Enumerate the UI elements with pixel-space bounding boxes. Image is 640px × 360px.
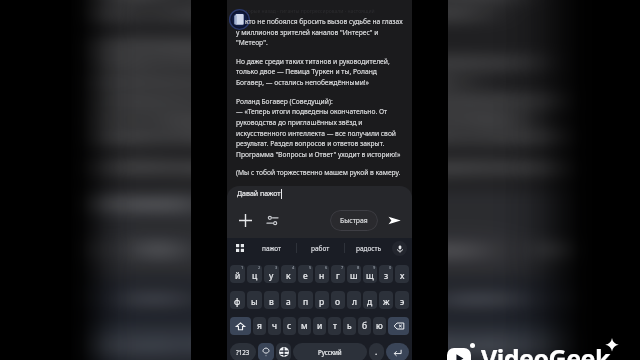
- button[interactable]: работ: [242, 280, 402, 314]
- staticText: — «Теперь итоги подведены окончательно. …: [236, 107, 388, 116]
- button[interactable]: Shift: [230, 317, 251, 335]
- button[interactable]: Enter: [386, 343, 409, 360]
- button[interactable]: а: [281, 291, 296, 309]
- button[interactable]: х: [575, 326, 623, 357]
- staticText: Богавер, — остались непобеждёнными!»: [34, 5, 490, 20]
- button[interactable]: б: [358, 317, 371, 335]
- button[interactable]: Emoji: [258, 343, 274, 360]
- button[interactable]: 0: [521, 326, 568, 357]
- staticText: искусственного интеллекта — все получили…: [34, 92, 582, 108]
- button[interactable]: я: [253, 317, 266, 335]
- staticText: у: [269, 270, 274, 282]
- button[interactable]: ж: [379, 291, 393, 309]
- staticText: ц: [89, 335, 109, 355]
- staticText: 3: [275, 265, 278, 270]
- button[interactable]: .: [369, 343, 384, 360]
- button[interactable]: ь: [343, 317, 356, 335]
- staticText: ф: [234, 296, 241, 308]
- button[interactable]: пажот: [248, 238, 296, 258]
- staticText: 9: [500, 326, 510, 335]
- button[interactable]: п: [298, 291, 313, 309]
- button[interactable]: 4: [281, 265, 296, 283]
- staticText: 4: [292, 265, 295, 270]
- button[interactable]: радость: [405, 280, 565, 314]
- button[interactable]: 2: [72, 326, 123, 357]
- button[interactable]: Backspace: [388, 317, 409, 335]
- staticText: "Метеор".: [236, 38, 268, 47]
- staticText: з: [384, 270, 389, 282]
- button[interactable]: с: [283, 317, 296, 335]
- staticText: результат. Раздел вопросов и ответов зак…: [34, 109, 541, 125]
- button[interactable]: и: [313, 317, 326, 335]
- button[interactable]: м: [298, 317, 311, 335]
- staticText: е: [303, 270, 308, 282]
- staticText: п: [303, 296, 309, 308]
- button[interactable]: 9: [363, 265, 377, 283]
- button[interactable]: л: [347, 291, 361, 309]
- button[interactable]: 7: [331, 265, 345, 283]
- button[interactable]: х: [395, 265, 409, 283]
- button[interactable]: р: [315, 291, 329, 309]
- button[interactable]: пажот: [75, 280, 238, 314]
- button[interactable]: 3: [130, 326, 181, 357]
- button[interactable]: ч: [268, 317, 281, 335]
- button[interactable]: 7: [357, 326, 405, 357]
- button[interactable]: ю: [373, 317, 386, 335]
- button[interactable]: 6: [315, 265, 329, 283]
- button[interactable]: Русский: [293, 343, 367, 360]
- staticText: радость: [442, 290, 531, 306]
- button[interactable]: ф: [230, 291, 245, 309]
- staticText: ц: [252, 270, 258, 282]
- button[interactable]: 9: [466, 326, 514, 357]
- staticText: 8: [446, 326, 456, 335]
- staticText: пажот: [123, 290, 191, 306]
- staticText: 2: [109, 326, 119, 335]
- button[interactable]: Send: [384, 210, 404, 230]
- button[interactable]: Send: [538, 232, 606, 266]
- button[interactable]: 6: [303, 326, 351, 357]
- button[interactable]: 0: [379, 265, 393, 283]
- staticText: н: [319, 270, 325, 282]
- staticText: ж: [383, 296, 390, 308]
- button[interactable]: радость: [345, 238, 392, 258]
- staticText: с: [287, 320, 292, 332]
- staticText: Быстрая: [388, 242, 483, 257]
- button[interactable]: Voice input: [392, 241, 407, 256]
- button[interactable]: 1: [230, 265, 245, 283]
- staticText: а: [286, 296, 291, 308]
- button[interactable]: ?123: [230, 343, 256, 360]
- button[interactable]: Attach: [31, 232, 99, 266]
- button[interactable]: 8: [412, 326, 459, 357]
- button[interactable]: д: [363, 291, 377, 309]
- button[interactable]: Attach: [235, 210, 255, 230]
- button[interactable]: Settings: [123, 232, 191, 266]
- staticText: ь: [347, 320, 352, 332]
- staticText: 0: [555, 326, 565, 335]
- staticText: Программа "Вопросы и Ответ" уходит в ист…: [236, 150, 401, 159]
- button[interactable]: 5: [298, 265, 313, 283]
- button[interactable]: в: [264, 291, 279, 309]
- button[interactable]: 3: [264, 265, 279, 283]
- button[interactable]: т: [328, 317, 341, 335]
- staticText: Русский: [318, 348, 342, 356]
- button[interactable]: о: [331, 291, 345, 309]
- staticText: 4: [225, 326, 235, 335]
- staticText: — «Теперь итоги подведены окончательно. …: [34, 54, 551, 70]
- button[interactable]: Быстрая: [330, 210, 378, 231]
- button[interactable]: Voice input: [565, 285, 616, 311]
- button[interactable]: 2: [247, 265, 262, 283]
- button[interactable]: 4: [187, 326, 238, 357]
- button[interactable]: ы: [247, 291, 262, 309]
- button[interactable]: э: [395, 291, 409, 309]
- staticText: ы: [251, 296, 258, 308]
- button[interactable]: Keyboard options: [232, 240, 248, 256]
- button[interactable]: Change language: [276, 343, 291, 360]
- button[interactable]: 8: [347, 265, 361, 283]
- button[interactable]: работ: [297, 238, 344, 258]
- button[interactable]: Settings: [262, 210, 282, 230]
- button[interactable]: Быстрая: [354, 232, 517, 268]
- button[interactable]: 5: [245, 326, 296, 357]
